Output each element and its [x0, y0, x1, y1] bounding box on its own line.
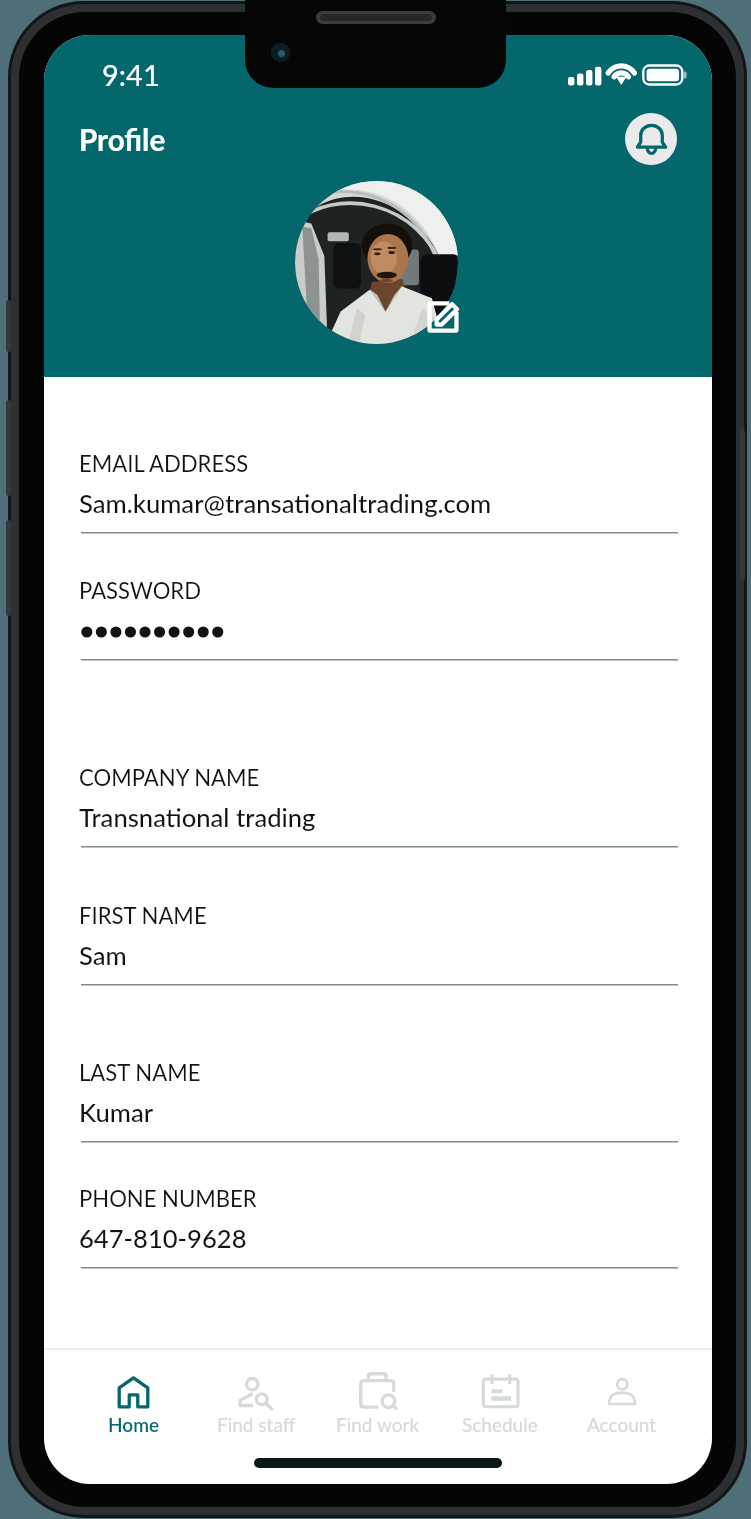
button[interactable]: Find staff: [195, 1372, 317, 1436]
staticText: PASSWORD: [79, 577, 202, 604]
staticText: Transnational trading: [79, 802, 316, 833]
button[interactable]: Home: [72, 1372, 195, 1436]
staticText: Profile: [79, 122, 166, 158]
staticText: PHONE NUMBER: [79, 1185, 257, 1212]
staticText: Home: [108, 1413, 160, 1436]
staticText: EMAIL ADDRESS: [79, 450, 249, 477]
staticText: Find work: [336, 1413, 420, 1436]
staticText: Schedule: [462, 1413, 538, 1436]
staticText: Sam.kumar@transationaltrading.com: [79, 488, 492, 519]
staticText: FIRST NAME: [79, 902, 207, 929]
staticText: Kumar: [79, 1097, 154, 1128]
staticText: LAST NAME: [79, 1059, 201, 1086]
staticText: Sam: [79, 940, 127, 971]
button[interactable]: Schedule: [439, 1372, 561, 1436]
staticText: 647-810-9628: [79, 1223, 247, 1254]
button[interactable]: Notifications: [625, 113, 677, 165]
button[interactable]: Find work: [317, 1372, 439, 1436]
staticText: Account: [587, 1413, 657, 1436]
staticText: Find staff: [217, 1413, 296, 1436]
button[interactable]: Edit profile photo: [424, 298, 462, 336]
staticText: 9:41: [102, 57, 160, 92]
staticText: COMPANY NAME: [79, 764, 260, 791]
button[interactable]: Account: [561, 1372, 683, 1436]
